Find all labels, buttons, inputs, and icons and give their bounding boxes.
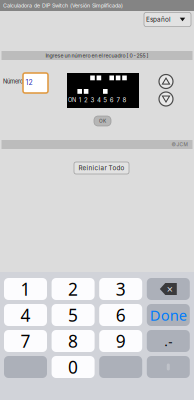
staticText: 4: [20, 303, 30, 326]
button[interactable]: [52, 356, 95, 378]
staticText: 8: [122, 96, 126, 104]
staticText: 12: [25, 78, 32, 87]
staticText: 3: [116, 277, 126, 300]
button[interactable]: [99, 330, 142, 352]
staticText: Reiniciar Todo: [78, 164, 124, 172]
staticText: 1: [20, 277, 30, 300]
button[interactable]: [99, 278, 142, 300]
staticText: Español: [146, 16, 171, 23]
button[interactable]: [4, 330, 47, 352]
staticText: Done: [150, 305, 187, 325]
staticText: Número:: [3, 78, 25, 85]
staticText: ON: [68, 97, 76, 103]
staticText: 7: [117, 96, 120, 104]
button[interactable]: [52, 304, 95, 326]
staticText: 8: [68, 329, 78, 352]
button[interactable]: Decrease number: [159, 92, 173, 106]
button[interactable]: Period and dash: [147, 330, 190, 352]
staticText: 5: [68, 303, 78, 326]
staticText: 6: [110, 96, 114, 104]
button[interactable]: Reiniciar Todo: [74, 162, 129, 174]
staticText: .-: [164, 332, 172, 350]
staticText: 1: [79, 96, 81, 104]
button[interactable]: [52, 278, 95, 300]
button[interactable]: [52, 330, 95, 352]
staticText: 7: [20, 329, 30, 352]
button[interactable]: Dictation: [147, 356, 190, 378]
staticText: 9: [116, 329, 126, 352]
staticText: ×: [167, 282, 173, 296]
button[interactable]: OK: [94, 116, 111, 126]
button[interactable]: [4, 278, 47, 300]
staticText: 3: [90, 96, 94, 104]
button[interactable]: Español: [144, 12, 191, 26]
staticText: Calculadora de DIP Switch (Versión Simpl…: [3, 2, 123, 9]
staticText: 4: [97, 96, 101, 104]
staticText: Ingrese un número en el recuadro [ 0 - 2…: [45, 52, 148, 59]
staticText: 0: [68, 355, 78, 378]
staticText: OK: [99, 118, 106, 124]
staticText: © JCM: [171, 142, 187, 147]
button[interactable]: Delete: [147, 278, 190, 300]
button[interactable]: Blank: [99, 356, 142, 378]
button[interactable]: Done: [147, 304, 190, 326]
button[interactable]: Increase number: [159, 74, 173, 88]
button[interactable]: [99, 304, 142, 326]
button[interactable]: Blank: [4, 356, 47, 378]
staticText: 5: [103, 96, 107, 104]
staticText: 2: [84, 96, 88, 104]
staticText: 6: [116, 303, 126, 326]
button[interactable]: [4, 304, 47, 326]
staticText: 2: [68, 277, 78, 300]
